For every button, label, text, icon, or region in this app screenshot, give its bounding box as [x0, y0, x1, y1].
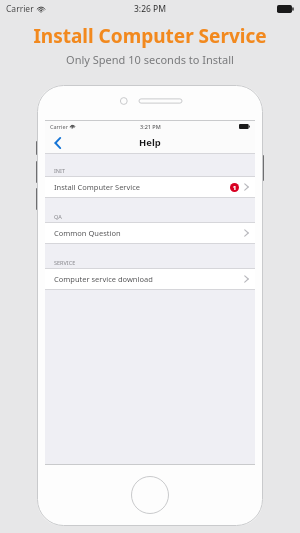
staticText: INIT: [54, 167, 65, 174]
button[interactable]: Common Question: [45, 223, 255, 243]
staticText: Carrier: [6, 3, 34, 15]
staticText: QA: [54, 213, 62, 220]
staticText: 3:26 PM: [134, 3, 167, 15]
staticText: 3:21 PM: [140, 123, 161, 130]
staticText: Computer service download: [54, 274, 153, 284]
staticText: Help: [139, 136, 161, 149]
button[interactable]: Back: [49, 135, 67, 151]
staticText: Only Spend 10 seconds to Install: [0, 52, 300, 67]
button[interactable]: Computer service download: [45, 269, 255, 289]
staticText: Carrier: [50, 123, 68, 130]
staticText: SERVICE: [54, 259, 76, 266]
staticText: Common Question: [54, 228, 121, 238]
staticText: 1: [233, 184, 237, 191]
staticText: Install Computer Service: [54, 182, 141, 192]
button[interactable]: Install Computer Service: [45, 177, 255, 197]
staticText: Install Computer Service: [0, 23, 300, 49]
